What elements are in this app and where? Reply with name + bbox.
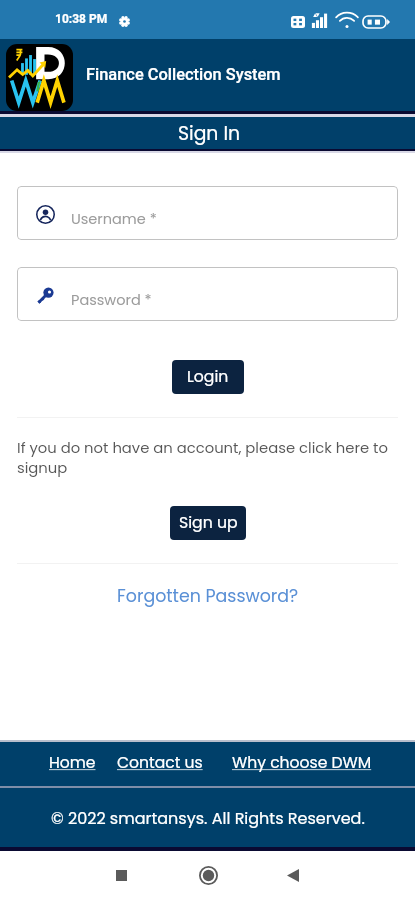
button[interactable]: Forgotten Password? [111, 581, 305, 611]
button[interactable]: Recent apps [99, 853, 144, 898]
staticText: Finance Collection System [86, 65, 281, 84]
staticText: If you do not have an account, please cl… [17, 437, 398, 478]
staticText: 10:38 PM [55, 12, 108, 26]
button[interactable]: Sign up [170, 506, 246, 540]
button[interactable]: Why choose DWM [230, 748, 374, 778]
staticText: Login [187, 366, 229, 388]
button[interactable]: Contact us [115, 748, 205, 778]
button[interactable]: Back [270, 853, 315, 898]
staticText: Home [49, 752, 96, 774]
button[interactable]: Username * [17, 186, 398, 240]
button[interactable]: Home [186, 853, 231, 898]
staticText: Password * [71, 290, 152, 310]
staticText: Why choose DWM [232, 752, 372, 774]
button[interactable]: Home [47, 748, 98, 778]
staticText: Username * [71, 209, 157, 229]
staticText: © 2022 smartansys. All Rights Reserved. [51, 807, 365, 829]
staticText: Sign up [179, 512, 238, 534]
staticText: Contact us [117, 752, 203, 774]
staticText: Forgotten Password? [117, 584, 299, 608]
staticText: Sign In [178, 120, 241, 146]
button[interactable]: Password * [17, 267, 398, 321]
button[interactable]: Login [172, 360, 244, 394]
